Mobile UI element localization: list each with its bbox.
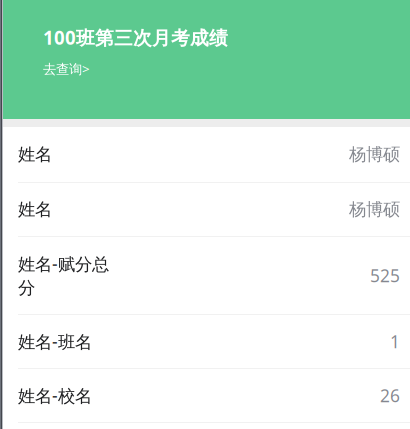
button[interactable]: 去查询>: [43, 50, 102, 85]
button[interactable]: 姓名-校名: [0, 369, 410, 423]
staticText: 姓名-班名: [18, 330, 92, 353]
staticText: 杨博硕: [349, 199, 400, 220]
staticText: 姓名: [18, 199, 52, 220]
staticText: 姓名-校名: [18, 384, 92, 407]
staticText: 姓名: [18, 144, 52, 165]
staticText: 去查询>: [43, 60, 90, 77]
button[interactable]: 姓名: [0, 183, 410, 237]
staticText: 26: [380, 384, 400, 407]
staticText: 姓名-赋分总分: [18, 252, 109, 299]
button[interactable]: 姓名-班名: [0, 315, 410, 369]
staticText: 100班第三次月考成绩: [43, 25, 228, 50]
staticText: 杨博硕: [349, 144, 400, 165]
staticText: 1: [390, 330, 400, 353]
staticText: 525: [370, 264, 400, 287]
button[interactable]: 姓名: [0, 127, 410, 183]
button[interactable]: 姓名-赋分总分: [0, 237, 410, 315]
